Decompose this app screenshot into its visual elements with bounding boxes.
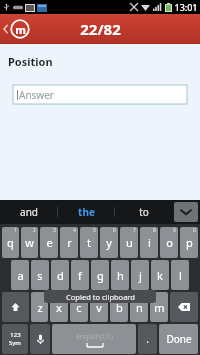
staticText: u — [126, 235, 133, 250]
button[interactable]: . — [138, 324, 157, 354]
button[interactable]: Done — [159, 324, 198, 354]
button[interactable]: i — [140, 227, 158, 258]
staticText: 22/82 — [80, 19, 121, 39]
staticText: h — [117, 268, 124, 283]
staticText: m — [15, 22, 26, 37]
button[interactable]: h — [111, 260, 129, 290]
button[interactable]: a — [11, 260, 29, 290]
staticText: d — [57, 268, 64, 283]
button[interactable]: Backspace — [170, 292, 198, 322]
staticText: 2 — [33, 227, 36, 234]
staticText: e — [46, 235, 53, 250]
button[interactable]: x — [50, 292, 68, 322]
staticText: to — [139, 205, 149, 219]
staticText: 3 — [53, 227, 56, 234]
button[interactable]: Space — [52, 324, 136, 354]
staticText: i — [148, 235, 151, 250]
staticText: 123 — [10, 331, 21, 339]
staticText: 5 — [93, 227, 96, 234]
button[interactable]: v — [90, 292, 108, 322]
staticText: j — [139, 268, 142, 283]
staticText: 6 — [113, 227, 116, 234]
staticText: c — [76, 300, 82, 315]
staticText: t — [87, 235, 91, 250]
staticText: 7 — [133, 227, 136, 234]
staticText: 1 — [14, 227, 17, 234]
button[interactable]: c — [70, 292, 88, 322]
staticText: g — [97, 268, 104, 283]
button[interactable]: w — [21, 227, 38, 258]
staticText: Done — [166, 332, 192, 346]
button[interactable]: n — [130, 292, 148, 322]
staticText: x — [56, 300, 62, 315]
button[interactable]: l — [171, 260, 189, 290]
staticText: n — [136, 300, 143, 315]
staticText: the — [78, 205, 95, 219]
staticText: q — [7, 235, 14, 250]
button[interactable]: f — [71, 260, 89, 290]
button[interactable]: e — [40, 227, 58, 258]
staticText: Sym — [9, 339, 21, 347]
staticText: Position — [8, 54, 53, 69]
staticText: and — [20, 205, 38, 219]
staticText: k — [157, 268, 163, 283]
staticText: v — [96, 300, 102, 315]
staticText: b — [116, 300, 123, 315]
staticText: w — [25, 235, 34, 250]
staticText: s — [37, 268, 43, 283]
button[interactable]: Expand suggestions — [174, 202, 198, 222]
staticText: y — [106, 235, 112, 250]
staticText: m — [154, 300, 165, 315]
staticText: . — [146, 332, 149, 346]
staticText: 9 — [173, 227, 176, 234]
button[interactable]: Back — [0, 14, 36, 44]
button[interactable]: g — [91, 260, 109, 290]
button[interactable]: to — [115, 200, 172, 224]
staticText: Copied to clipboard — [66, 292, 135, 302]
staticText: r — [67, 235, 72, 250]
button[interactable]: s — [31, 260, 49, 290]
button[interactable]: t — [80, 227, 98, 258]
button[interactable]: y — [100, 227, 118, 258]
button[interactable]: d — [51, 260, 69, 290]
staticText: f — [78, 268, 82, 283]
staticText: z — [37, 300, 43, 315]
button[interactable]: Answer — [13, 85, 187, 104]
button[interactable]: u — [120, 227, 138, 258]
button[interactable]: z — [31, 292, 48, 322]
staticText: English(US) — [76, 332, 113, 342]
button[interactable]: j — [131, 260, 149, 290]
staticText: o — [166, 235, 173, 250]
button[interactable]: o — [160, 227, 178, 258]
button[interactable]: m — [150, 292, 168, 322]
button[interactable]: 123 — [2, 324, 28, 354]
button[interactable]: b — [110, 292, 128, 322]
staticText: 8 — [153, 227, 156, 234]
button[interactable]: Voice input — [30, 324, 50, 354]
button[interactable]: the — [58, 200, 115, 224]
staticText: 4 — [73, 227, 76, 234]
button[interactable]: q — [2, 227, 19, 258]
staticText: 13:01 — [174, 1, 198, 13]
staticText: l — [179, 268, 182, 283]
button[interactable]: r — [60, 227, 78, 258]
staticText: 0 — [193, 227, 196, 234]
staticText: p — [186, 235, 193, 250]
staticText: a — [17, 268, 24, 283]
button[interactable]: k — [151, 260, 169, 290]
staticText: Answer — [19, 88, 54, 102]
button[interactable]: p — [180, 227, 198, 258]
button[interactable]: and — [0, 200, 58, 224]
button[interactable]: Shift — [2, 292, 29, 322]
